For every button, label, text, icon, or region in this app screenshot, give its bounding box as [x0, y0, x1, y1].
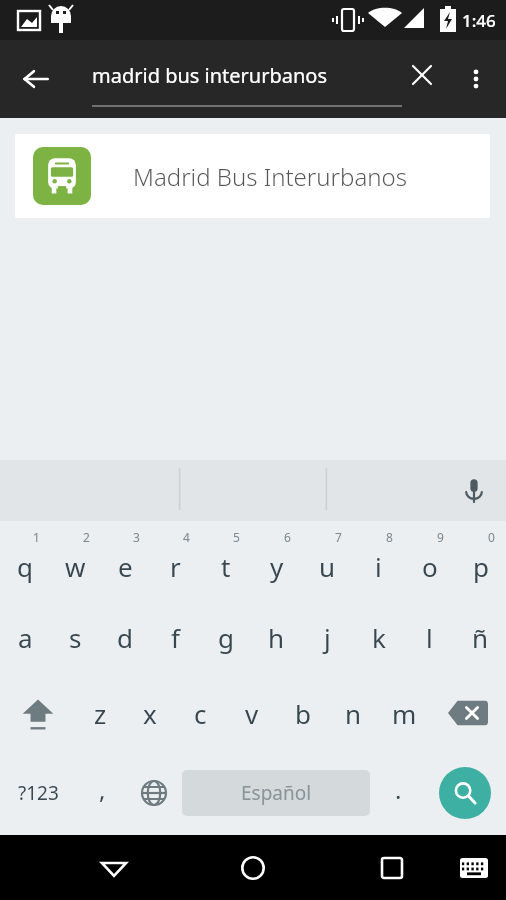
staticText: i: [375, 549, 382, 584]
button[interactable]: Hide keyboard: [86, 840, 142, 896]
button[interactable]: 3: [100, 521, 150, 599]
button[interactable]: ?123: [0, 751, 77, 835]
staticText: k: [372, 620, 386, 655]
button[interactable]: g: [200, 599, 251, 675]
staticText: 2: [83, 529, 90, 545]
staticText: a: [18, 620, 33, 655]
button[interactable]: z: [75, 675, 125, 751]
staticText: j: [324, 620, 331, 655]
staticText: b: [295, 696, 311, 731]
staticText: 1:46: [462, 9, 496, 32]
button[interactable]: 9: [404, 521, 455, 599]
button[interactable]: madrid bus interurbanos: [92, 50, 402, 108]
button[interactable]: d: [100, 599, 150, 675]
staticText: l: [426, 620, 433, 655]
button[interactable]: More options: [452, 55, 500, 103]
staticText: o: [422, 549, 438, 584]
button[interactable]: f: [150, 599, 200, 675]
staticText: r: [170, 549, 181, 584]
staticText: g: [218, 620, 234, 655]
button[interactable]: c: [175, 675, 226, 751]
staticText: Español: [241, 780, 312, 806]
staticText: z: [94, 696, 107, 731]
button[interactable]: Change language: [128, 751, 179, 835]
staticText: 0: [488, 529, 495, 545]
staticText: e: [118, 549, 133, 584]
button[interactable]: k: [353, 599, 404, 675]
staticText: v: [245, 696, 259, 731]
button[interactable]: Español: [182, 770, 370, 816]
button[interactable]: 5: [200, 521, 251, 599]
button[interactable]: 6: [251, 521, 302, 599]
button[interactable]: 7: [302, 521, 353, 599]
button[interactable]: m: [379, 675, 430, 751]
button[interactable]: v: [226, 675, 277, 751]
staticText: u: [319, 549, 336, 584]
staticText: Madrid Bus Interurbanos: [133, 160, 490, 193]
button[interactable]: Search: [424, 751, 506, 835]
staticText: y: [270, 549, 284, 584]
button[interactable]: 2: [50, 521, 100, 599]
button[interactable]: l: [404, 599, 455, 675]
button[interactable]: Recent apps: [364, 840, 420, 896]
staticText: n: [345, 696, 362, 731]
staticText: 6: [284, 529, 291, 545]
staticText: madrid bus interurbanos: [92, 62, 328, 89]
button[interactable]: Shift: [0, 675, 75, 751]
button[interactable]: Clear search: [398, 51, 446, 99]
button[interactable]: 8: [353, 521, 404, 599]
button[interactable]: h: [251, 599, 302, 675]
staticText: ,: [99, 773, 106, 806]
staticText: x: [143, 696, 157, 731]
button[interactable]: b: [277, 675, 328, 751]
button[interactable]: Back: [8, 51, 64, 107]
button[interactable]: Switch keyboard: [448, 842, 500, 894]
button[interactable]: n: [328, 675, 379, 751]
staticText: f: [171, 620, 180, 655]
staticText: w: [65, 549, 86, 584]
button[interactable]: Backspace: [430, 675, 506, 751]
staticText: ñ: [472, 620, 489, 655]
staticText: 9: [437, 529, 444, 545]
button[interactable]: a: [0, 599, 50, 675]
staticText: t: [221, 549, 231, 584]
button[interactable]: s: [50, 599, 100, 675]
staticText: 7: [335, 529, 342, 545]
button[interactable]: j: [302, 599, 353, 675]
button[interactable]: Voice input: [448, 465, 500, 517]
staticText: h: [268, 620, 285, 655]
staticText: .: [395, 773, 402, 806]
button[interactable]: 1: [0, 521, 50, 599]
staticText: 4: [183, 529, 190, 545]
staticText: 1: [33, 529, 40, 545]
button[interactable]: .: [373, 751, 424, 835]
button[interactable]: 0: [455, 521, 506, 599]
button[interactable]: ,: [77, 751, 128, 835]
staticText: s: [69, 620, 82, 655]
staticText: p: [473, 549, 489, 584]
button[interactable]: Home: [225, 840, 281, 896]
staticText: q: [17, 549, 33, 584]
staticText: m: [392, 696, 417, 731]
staticText: d: [117, 620, 133, 655]
button[interactable]: Madrid Bus Interurbanos: [15, 134, 490, 218]
staticText: 3: [133, 529, 140, 545]
button[interactable]: ñ: [455, 599, 506, 675]
staticText: c: [194, 696, 207, 731]
button[interactable]: x: [125, 675, 175, 751]
staticText: ?123: [18, 780, 59, 806]
button[interactable]: 4: [150, 521, 200, 599]
staticText: 5: [233, 529, 240, 545]
staticText: 8: [386, 529, 393, 545]
